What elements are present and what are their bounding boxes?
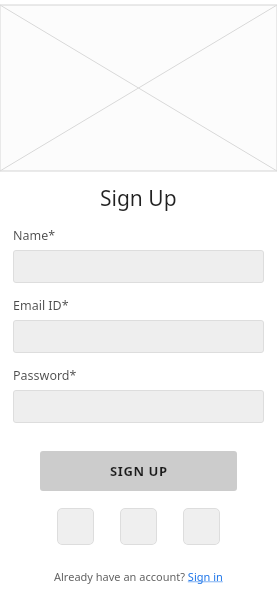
staticText: Already have an account? Sign in: [54, 569, 223, 584]
button[interactable]: [13, 250, 264, 283]
button[interactable]: [13, 390, 264, 423]
staticText: SIGN UP: [110, 462, 168, 480]
button[interactable]: Sign up with Google: [120, 508, 157, 545]
button[interactable]: Already have an account? Sign in: [54, 569, 223, 584]
staticText: Password*: [13, 367, 77, 384]
button[interactable]: Sign up with Twitter: [183, 508, 220, 545]
staticText: Email ID*: [13, 297, 69, 314]
staticText: Sign Up: [100, 184, 177, 213]
staticText: Name*: [13, 227, 56, 244]
button[interactable]: Sign up with Facebook: [57, 508, 94, 545]
button[interactable]: [13, 320, 264, 353]
button[interactable]: SIGN UP: [40, 451, 237, 491]
